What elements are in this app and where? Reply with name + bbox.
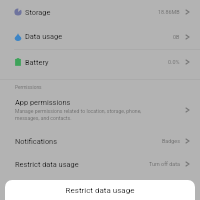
button[interactable]: App permissions <box>0 98 200 122</box>
button[interactable]: Data usage <box>0 24 200 49</box>
staticText: 18.86MB <box>158 9 180 15</box>
staticText: Notifications <box>15 137 58 146</box>
staticText: 0.0% <box>168 59 180 65</box>
button[interactable]: Battery <box>0 50 200 74</box>
staticText: Storage <box>25 8 51 17</box>
button[interactable]: Storage <box>0 0 200 24</box>
staticText: Restrict data usage <box>15 160 79 169</box>
staticText: App permissions <box>15 98 71 107</box>
button[interactable]: Restrict data usage <box>0 152 200 176</box>
staticText: Badges <box>162 138 180 144</box>
staticText: Battery <box>25 58 49 67</box>
staticText: Permissions <box>15 85 42 91</box>
staticText: Turn off data <box>149 161 180 167</box>
staticText: Manage permissions related to location, … <box>15 108 143 122</box>
staticText: Restrict data usage <box>5 186 195 195</box>
button[interactable]: Notifications <box>0 130 200 152</box>
staticText: 0B <box>173 34 180 40</box>
staticText: Data usage <box>25 32 63 41</box>
